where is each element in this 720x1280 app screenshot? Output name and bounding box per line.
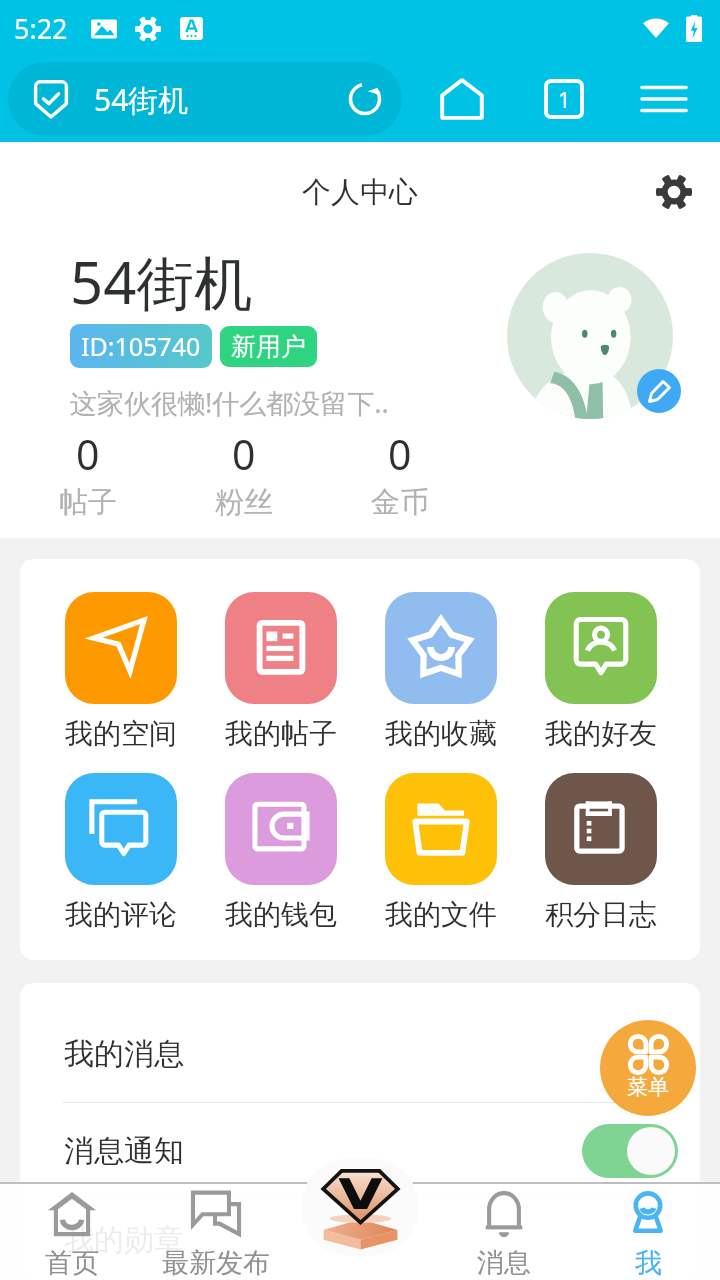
staticText: 我的评论: [65, 897, 177, 932]
button[interactable]: 我: [576, 1182, 720, 1280]
button[interactable]: 首页: [0, 1182, 144, 1280]
button[interactable]: 积分日志: [545, 773, 657, 932]
staticText: 我: [635, 1246, 662, 1280]
button[interactable]: Settings: [646, 164, 702, 220]
button[interactable]: 我的勋章: [20, 1200, 700, 1280]
staticText: 54街机: [70, 242, 253, 321]
button[interactable]: 0: [368, 426, 432, 521]
button[interactable]: 消息: [432, 1182, 576, 1280]
button[interactable]: 我的评论: [65, 773, 177, 932]
button[interactable]: Edit profile: [637, 369, 681, 413]
staticText: 我的消息: [64, 1035, 184, 1073]
staticText: 新用户: [231, 331, 306, 362]
staticText: 帖子: [56, 484, 120, 521]
staticText: 我的收藏: [385, 716, 497, 751]
staticText: 0: [76, 426, 100, 482]
button[interactable]: Publish: [301, 1158, 419, 1256]
staticText: 首页: [45, 1246, 99, 1280]
button[interactable]: 我的收藏: [385, 592, 497, 751]
staticText: 金币: [368, 484, 432, 521]
staticText: 我的钱包: [225, 897, 337, 932]
staticText: 菜单: [627, 1074, 669, 1100]
button[interactable]: 我的消息: [20, 1006, 700, 1102]
button[interactable]: 0: [212, 426, 276, 521]
staticText: 我的空间: [65, 716, 177, 751]
button[interactable]: Tabs: [534, 69, 594, 129]
staticText: 个人中心: [302, 174, 418, 211]
staticText: 1: [558, 84, 571, 114]
staticText: 我的好友: [545, 716, 657, 751]
staticText: 5:22: [14, 10, 68, 47]
button[interactable]: 消息通知: [20, 1103, 700, 1199]
button[interactable]: 我的钱包: [225, 773, 337, 932]
button[interactable]: 最新发布: [144, 1182, 288, 1280]
staticText: 这家伙很懒!什么都没留下..: [70, 384, 389, 421]
staticText: 最新发布: [162, 1246, 270, 1280]
button[interactable]: 0: [56, 426, 120, 521]
staticText: 54街机: [94, 79, 189, 120]
staticText: 我的文件: [385, 897, 497, 932]
button[interactable]: Refresh: [338, 72, 392, 126]
button[interactable]: Menu: [634, 69, 694, 129]
button[interactable]: 54街机: [8, 62, 402, 136]
staticText: 粉丝: [212, 484, 276, 521]
button[interactable]: Avatar: [507, 253, 673, 419]
staticText: ID:105740: [81, 329, 201, 363]
button[interactable]: Home: [432, 69, 492, 129]
button[interactable]: 我的空间: [65, 592, 177, 751]
staticText: 积分日志: [545, 897, 657, 932]
button[interactable]: 我的文件: [385, 773, 497, 932]
staticText: 0: [388, 426, 412, 482]
staticText: 消息通知: [64, 1132, 184, 1170]
staticText: 消息: [477, 1246, 531, 1280]
staticText: 我的勋章: [64, 1221, 184, 1259]
button[interactable]: Notification toggle: [582, 1124, 678, 1178]
button[interactable]: 我的好友: [545, 592, 657, 751]
button[interactable]: Menu: [600, 1020, 696, 1116]
staticText: 0: [232, 426, 256, 482]
button[interactable]: 我的帖子: [225, 592, 337, 751]
staticText: 我的帖子: [225, 716, 337, 751]
